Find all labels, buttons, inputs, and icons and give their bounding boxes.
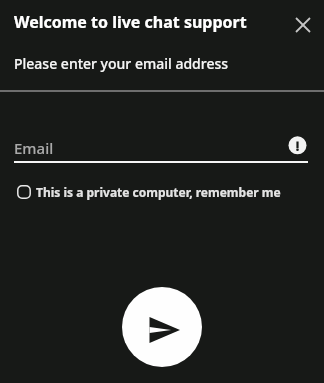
button[interactable]: [122, 287, 202, 367]
staticText: Email: [14, 138, 54, 158]
staticText: Welcome to live chat support: [14, 11, 247, 33]
button[interactable]: [14, 128, 308, 163]
staticText: Please enter your email address: [14, 54, 229, 73]
button[interactable]: This is a private computer, remember me: [17, 184, 281, 200]
staticText: This is a private computer, remember me: [36, 184, 281, 200]
button[interactable]: [292, 14, 314, 36]
